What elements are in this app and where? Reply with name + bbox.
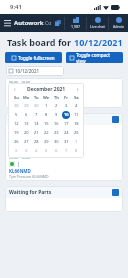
button[interactable]: 30 — [51, 137, 61, 146]
button[interactable]: 09:00 — [5, 125, 123, 153]
staticText: 30 — [54, 139, 59, 144]
button[interactable]: 09:00 — [5, 78, 123, 106]
button[interactable]: 29 — [21, 101, 31, 110]
button[interactable]: 26 — [11, 137, 21, 146]
staticText: 14 — [34, 121, 39, 126]
button[interactable]: Live chat — [87, 14, 108, 32]
button[interactable]: 1 — [71, 137, 81, 146]
staticText: 20 — [24, 130, 29, 135]
staticText: Toggle fullscreen — [18, 55, 55, 61]
button[interactable]: 8 — [41, 110, 51, 119]
button[interactable]: 9 — [51, 110, 61, 119]
button[interactable]: 3 — [61, 101, 71, 110]
staticText: 10:00 — [21, 155, 30, 160]
button[interactable]: Previous month — [11, 86, 18, 93]
button[interactable]: 27 — [21, 137, 31, 146]
button[interactable]: 10/12/2021 — [6, 66, 64, 76]
staticText: 5 — [45, 148, 48, 153]
button[interactable]: In progress — [5, 113, 123, 125]
staticText: In progress — [9, 116, 38, 123]
button[interactable]: 25 — [71, 128, 81, 137]
staticText: 1 — [45, 103, 48, 108]
staticText: 13 — [24, 121, 29, 126]
staticText: 5 — [15, 112, 18, 117]
staticText: 8 — [75, 148, 78, 153]
staticText: 18 — [74, 121, 79, 126]
staticText: Tyre Pressure KL66NMD — [9, 174, 49, 179]
button[interactable]: 16 — [51, 119, 61, 128]
staticText: 8 — [45, 112, 48, 117]
button[interactable]: Add task — [112, 189, 119, 196]
staticText: GO44VTW — [9, 140, 31, 146]
button[interactable]: Add task — [112, 116, 119, 123]
staticText: 25 — [74, 130, 79, 135]
staticText: Admin — [113, 24, 124, 29]
button[interactable]: Funds — [65, 14, 86, 32]
button[interactable]: 5 — [11, 110, 21, 119]
button[interactable]: Toggle compact view — [66, 52, 123, 63]
button[interactable]: 28 — [11, 101, 21, 110]
button[interactable]: 15 — [41, 119, 51, 128]
button[interactable]: 2 — [51, 101, 61, 110]
button[interactable]: Toggle fullscreen — [5, 52, 62, 63]
staticText: 28 — [34, 139, 39, 144]
button[interactable]: 23 — [51, 128, 61, 137]
button[interactable]: Waiting for Parts — [5, 186, 123, 198]
button[interactable]: 19 — [11, 128, 21, 137]
button[interactable]: 1 — [41, 101, 51, 110]
button[interactable]: 3 — [21, 146, 31, 155]
staticText: 1 — [75, 139, 78, 144]
staticText: KL66NMD — [9, 168, 31, 174]
button[interactable]: 18 — [71, 119, 81, 128]
button[interactable]: Menu — [0, 16, 14, 30]
button[interactable]: 28 — [31, 137, 41, 146]
staticText: 9:41 — [10, 3, 22, 11]
button[interactable]: 22 — [41, 128, 51, 137]
button[interactable]: 11 — [71, 110, 81, 119]
button[interactable]: 4 — [31, 146, 41, 155]
staticText: 27 — [24, 139, 29, 144]
button[interactable]: 20 — [21, 128, 31, 137]
button[interactable]: Next month — [74, 86, 81, 93]
button[interactable]: 5 — [41, 146, 51, 155]
staticText: 4 — [35, 148, 38, 153]
button[interactable]: 6 — [51, 146, 61, 155]
staticText: Toggle compact view — [76, 52, 119, 63]
button[interactable]: 6 — [21, 110, 31, 119]
staticText: 24 — [64, 130, 69, 135]
button[interactable]: 31 — [61, 137, 71, 146]
staticText: 7 — [35, 112, 38, 117]
button[interactable]: Copy — [52, 14, 64, 32]
staticText: 29 — [24, 103, 29, 108]
button[interactable]: 09:00 — [5, 153, 123, 181]
button[interactable]: 10 — [61, 110, 71, 119]
staticText: 15 — [44, 121, 49, 126]
button[interactable]: Admin — [109, 14, 128, 32]
staticText: 10:00 — [21, 127, 30, 132]
button[interactable]: 4 — [71, 101, 81, 110]
staticText: 16 — [54, 121, 59, 126]
staticText: 6 — [25, 112, 28, 117]
staticText: Sa — [74, 95, 79, 100]
staticText: 29 — [44, 139, 49, 144]
staticText: 09:00 — [9, 127, 18, 132]
button[interactable]: 21 — [31, 128, 41, 137]
staticText: 22 — [44, 130, 49, 135]
staticText: 10/12/2021 — [15, 68, 40, 74]
staticText: Live chat — [90, 24, 105, 29]
staticText: 28 — [14, 103, 19, 108]
button[interactable]: 12 — [11, 119, 21, 128]
button[interactable]: 13 — [21, 119, 31, 128]
button[interactable]: 30 — [31, 101, 41, 110]
staticText: Mo — [23, 95, 30, 100]
staticText: December 2021 — [27, 86, 66, 93]
button[interactable]: 8 — [71, 146, 81, 155]
staticText: 21 — [34, 130, 39, 135]
button[interactable]: 7 — [31, 110, 41, 119]
button[interactable]: 17 — [61, 119, 71, 128]
button[interactable]: 2 — [11, 146, 21, 155]
button[interactable]: 24 — [61, 128, 71, 137]
button[interactable]: 14 — [31, 119, 41, 128]
button[interactable]: 7 — [61, 146, 71, 155]
button[interactable]: 29 — [41, 137, 51, 146]
